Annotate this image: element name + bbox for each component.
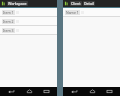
button[interactable]: App icon [1,1,6,6]
staticText: Detail [84,1,94,6]
button[interactable]: Detail [83,1,95,6]
staticText: Workspace [8,1,27,6]
button[interactable]: Client [70,1,82,6]
button[interactable]: Recent apps [103,87,115,96]
button[interactable]: Item 1 [0,8,57,17]
button[interactable]: Home [86,87,98,96]
button[interactable]: Name 1 [63,8,120,17]
button[interactable]: Back [68,87,80,96]
button[interactable]: Item 3 [0,26,57,35]
staticText: Client [71,1,81,6]
button[interactable]: Workspace [7,1,28,6]
button[interactable]: Item 2 [0,17,57,26]
button[interactable]: Recent apps [40,87,52,96]
button[interactable]: App icon [64,1,69,6]
button[interactable]: Home [23,87,35,96]
staticText: Item 1 [3,10,14,15]
button[interactable]: Back [5,87,17,96]
staticText: Item 3 [3,28,14,33]
staticText: Item 2 [3,19,14,24]
staticText: Name 1 [66,10,79,15]
